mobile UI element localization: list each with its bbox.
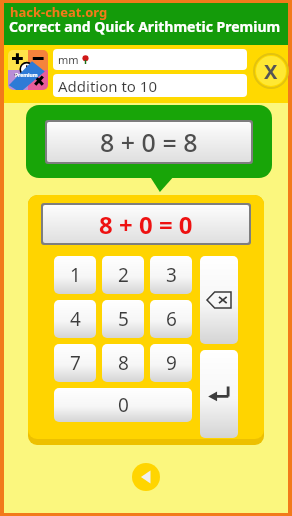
button[interactable]: 9: [150, 344, 192, 382]
button[interactable]: 6: [150, 300, 192, 338]
button[interactable]: mm: [53, 49, 247, 70]
staticText: 7: [70, 350, 81, 376]
staticText: 8 + 0 = 0: [99, 208, 193, 241]
button[interactable]: 1: [54, 256, 96, 294]
button[interactable]: 5: [102, 300, 144, 338]
button[interactable]: Backspace: [200, 256, 238, 344]
staticText: 8: [118, 350, 129, 376]
button[interactable]: 3: [150, 256, 192, 294]
staticText: Premium: [15, 72, 38, 79]
staticText: 6: [166, 306, 177, 332]
staticText: mm: [58, 52, 79, 67]
button[interactable]: 8: [102, 344, 144, 382]
button[interactable]: Enter: [200, 350, 238, 438]
button[interactable]: Close: [253, 53, 289, 89]
staticText: 5: [118, 306, 129, 332]
button[interactable]: 0: [54, 388, 192, 422]
button[interactable]: 8 + 0 = 8: [26, 105, 272, 178]
staticText: Correct and Quick Arithmetic Premium: [9, 17, 281, 36]
staticText: 8 + 0 = 8: [100, 125, 198, 159]
button[interactable]: Addition to 10: [53, 74, 247, 97]
staticText: 9: [166, 350, 177, 376]
staticText: hack-cheat.org: [10, 3, 108, 21]
button[interactable]: Back: [132, 463, 160, 491]
staticText: X: [264, 58, 278, 85]
button[interactable]: 7: [54, 344, 96, 382]
button[interactable]: 4: [54, 300, 96, 338]
staticText: 4: [70, 306, 81, 332]
button[interactable]: 2: [102, 256, 144, 294]
button[interactable]: App icon: [8, 50, 48, 90]
staticText: 0: [118, 392, 129, 418]
staticText: 1: [70, 262, 81, 288]
staticText: 3: [166, 262, 177, 288]
staticText: Addition to 10: [58, 76, 157, 96]
staticText: 2: [118, 262, 129, 288]
